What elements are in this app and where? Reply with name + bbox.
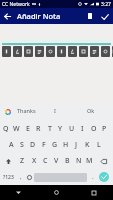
staticText: E xyxy=(26,124,30,134)
staticText: Ok xyxy=(87,107,95,114)
button[interactable]: Enter xyxy=(99,172,109,182)
staticText: U xyxy=(69,124,75,134)
staticText: L xyxy=(97,140,101,150)
button[interactable]: Format tool xyxy=(13,46,22,57)
button[interactable]: Format tool xyxy=(68,46,77,57)
button[interactable]: O xyxy=(88,121,99,137)
button[interactable]: I xyxy=(77,121,88,137)
button[interactable]: Format tool xyxy=(101,46,110,57)
staticText: S xyxy=(20,140,24,150)
button[interactable]: W xyxy=(11,121,22,137)
button[interactable]: T xyxy=(44,121,55,137)
button[interactable]: Format tool xyxy=(57,46,66,57)
button[interactable]: K xyxy=(82,137,93,153)
staticText: O xyxy=(91,124,97,134)
button[interactable]: , xyxy=(16,169,25,185)
staticText: 3:27 xyxy=(101,1,111,8)
button[interactable]: P xyxy=(99,121,110,137)
button[interactable]: V xyxy=(51,153,62,169)
button[interactable]: ?123 xyxy=(0,169,16,185)
staticText: T xyxy=(48,124,52,134)
button[interactable]: J xyxy=(71,137,82,153)
button[interactable]: U xyxy=(66,121,77,137)
button[interactable]: X xyxy=(28,153,40,169)
staticText: K xyxy=(85,140,90,150)
staticText: Y xyxy=(58,124,63,134)
staticText: V xyxy=(54,156,59,166)
staticText: Thanks xyxy=(17,107,36,114)
staticText: F xyxy=(42,140,46,150)
button[interactable]: Z xyxy=(16,153,28,169)
staticText: C xyxy=(43,156,48,166)
staticText: H xyxy=(63,140,69,150)
button[interactable]: Ok xyxy=(69,105,113,116)
button[interactable]: Y xyxy=(55,121,66,137)
staticText: M xyxy=(86,156,93,166)
button[interactable]: Google xyxy=(4,108,11,115)
staticText: J xyxy=(75,140,78,150)
button[interactable]: Home xyxy=(37,185,75,200)
button[interactable]: B xyxy=(62,153,73,169)
button[interactable]: Save xyxy=(97,9,112,24)
button[interactable]: Format tool xyxy=(2,46,11,57)
button[interactable]: Format tool xyxy=(79,46,88,57)
button[interactable]: E xyxy=(22,121,33,137)
staticText: R xyxy=(36,124,41,134)
button[interactable]: D xyxy=(27,137,38,153)
staticText: I xyxy=(54,107,56,114)
button[interactable]: N xyxy=(73,153,84,169)
staticText: , xyxy=(20,173,22,181)
button[interactable]: C xyxy=(40,153,51,169)
staticText: Añadir Nota xyxy=(17,11,61,21)
staticText: P xyxy=(102,124,107,134)
button[interactable]: Back xyxy=(0,185,37,200)
button[interactable]: A xyxy=(6,137,16,153)
button[interactable]: G xyxy=(49,137,60,153)
button[interactable]: Note colour xyxy=(83,9,97,23)
staticText: I xyxy=(81,124,84,134)
button[interactable]: Shift xyxy=(0,153,16,169)
button[interactable]: Format tool xyxy=(90,46,99,57)
button[interactable]: Back xyxy=(0,9,15,24)
button[interactable]: Backspace xyxy=(95,153,113,169)
button[interactable]: R xyxy=(33,121,44,137)
staticText: D xyxy=(30,140,36,150)
button[interactable]: Q xyxy=(0,121,11,137)
staticText: N xyxy=(76,156,82,166)
staticText: A xyxy=(9,140,14,150)
button[interactable]: I xyxy=(41,105,69,116)
button[interactable]: . xyxy=(87,169,99,185)
button[interactable]: F xyxy=(38,137,49,153)
staticText: B xyxy=(65,156,70,166)
button[interactable]: Recents xyxy=(75,185,113,200)
staticText: . xyxy=(92,173,94,181)
button[interactable]: Thanks xyxy=(11,105,41,116)
staticText: G xyxy=(52,140,58,150)
staticText: Z xyxy=(20,156,25,166)
button[interactable]: Format tool xyxy=(35,46,44,57)
button[interactable]: Format tool xyxy=(46,46,55,57)
button[interactable]: H xyxy=(60,137,71,153)
button[interactable]: Emoji xyxy=(25,169,34,185)
button[interactable]: Format tool xyxy=(112,46,113,57)
staticText: CC Network xyxy=(2,1,30,8)
staticText: Q xyxy=(3,124,9,134)
staticText: X xyxy=(32,156,37,166)
button[interactable]: S xyxy=(16,137,27,153)
button[interactable]: M xyxy=(84,153,95,169)
staticText: W xyxy=(13,124,20,134)
button[interactable]: L xyxy=(93,137,104,153)
button[interactable]: Format tool xyxy=(24,46,33,57)
staticText: ?123 xyxy=(3,174,14,181)
